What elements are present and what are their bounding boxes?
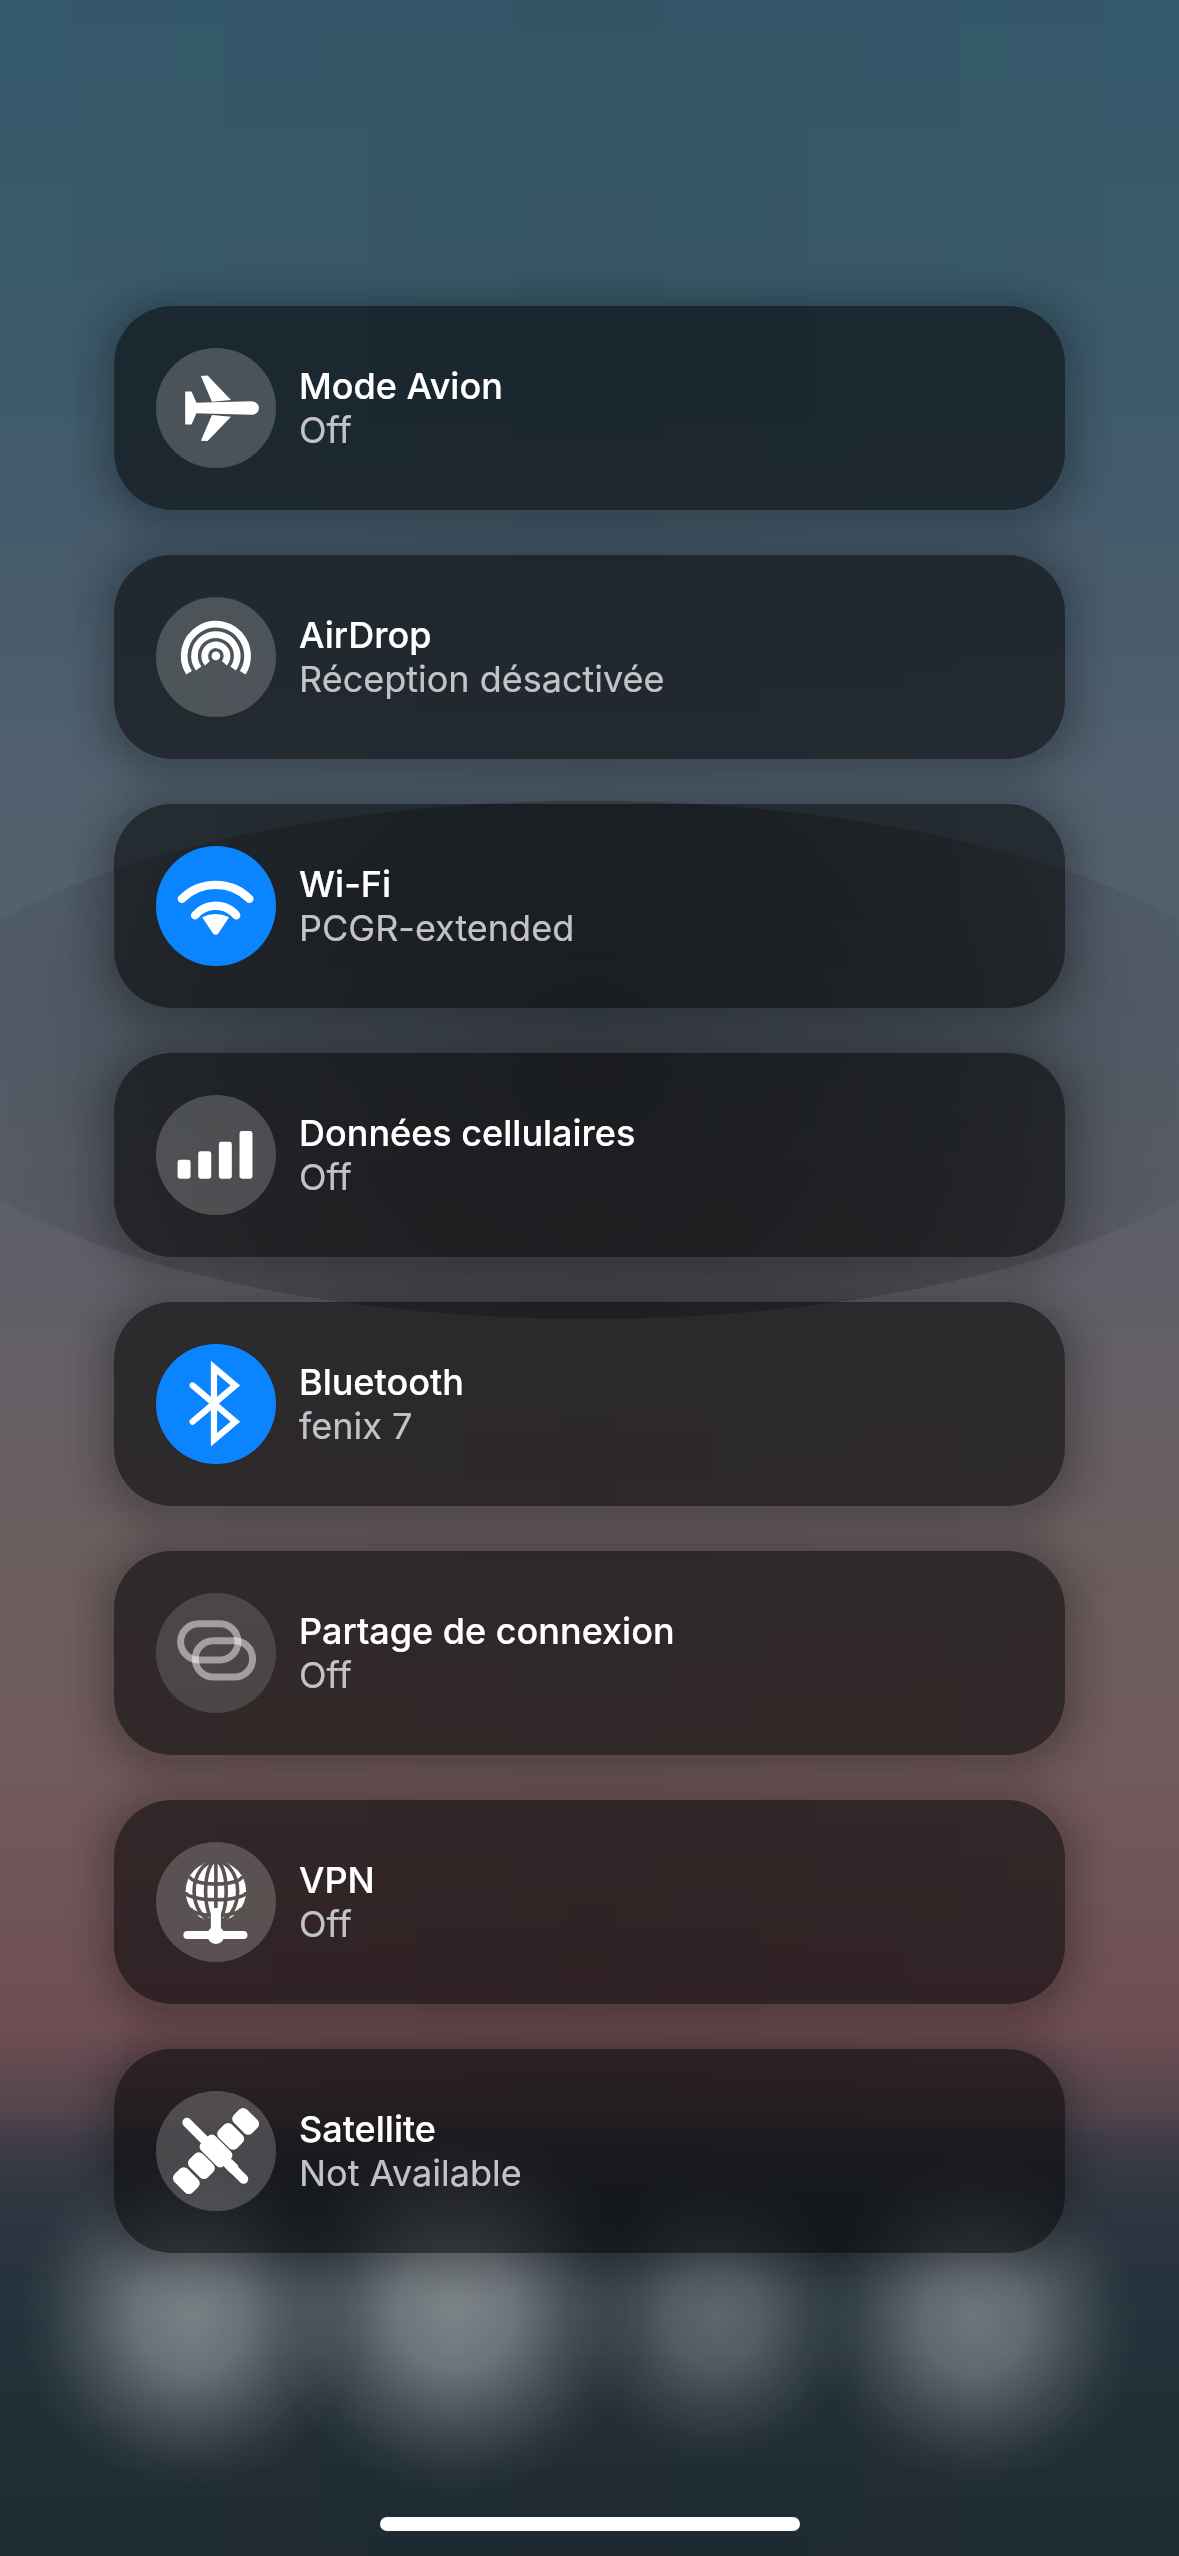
button[interactable]: Données cellulaires: [114, 1053, 1065, 1257]
staticText: Satellite: [299, 2107, 437, 2151]
staticText: fenix 7: [299, 1404, 413, 1448]
staticText: Mode Avion: [299, 364, 503, 408]
staticText: Réception désactivée: [299, 657, 665, 701]
button[interactable]: Wi-Fi: [114, 804, 1065, 1008]
button[interactable]: VPN: [114, 1800, 1065, 2004]
staticText: Off: [299, 1653, 352, 1697]
button[interactable]: AirDrop: [114, 555, 1065, 759]
staticText: Off: [299, 1902, 352, 1946]
staticText: VPN: [299, 1858, 375, 1902]
staticText: Wi-Fi: [299, 862, 392, 906]
button[interactable]: Partage de connexion: [114, 1551, 1065, 1755]
staticText: Bluetooth: [299, 1360, 464, 1404]
staticText: PCGR-extended: [299, 906, 575, 950]
staticText: Données cellulaires: [299, 1111, 636, 1155]
button[interactable]: Bluetooth: [114, 1302, 1065, 1506]
staticText: Partage de connexion: [299, 1609, 675, 1653]
staticText: Off: [299, 408, 352, 452]
staticText: Not Available: [299, 2151, 522, 2195]
staticText: AirDrop: [299, 613, 432, 657]
button[interactable]: Mode Avion: [114, 306, 1065, 510]
staticText: Off: [299, 1155, 352, 1199]
button[interactable]: Satellite: [114, 2049, 1065, 2253]
